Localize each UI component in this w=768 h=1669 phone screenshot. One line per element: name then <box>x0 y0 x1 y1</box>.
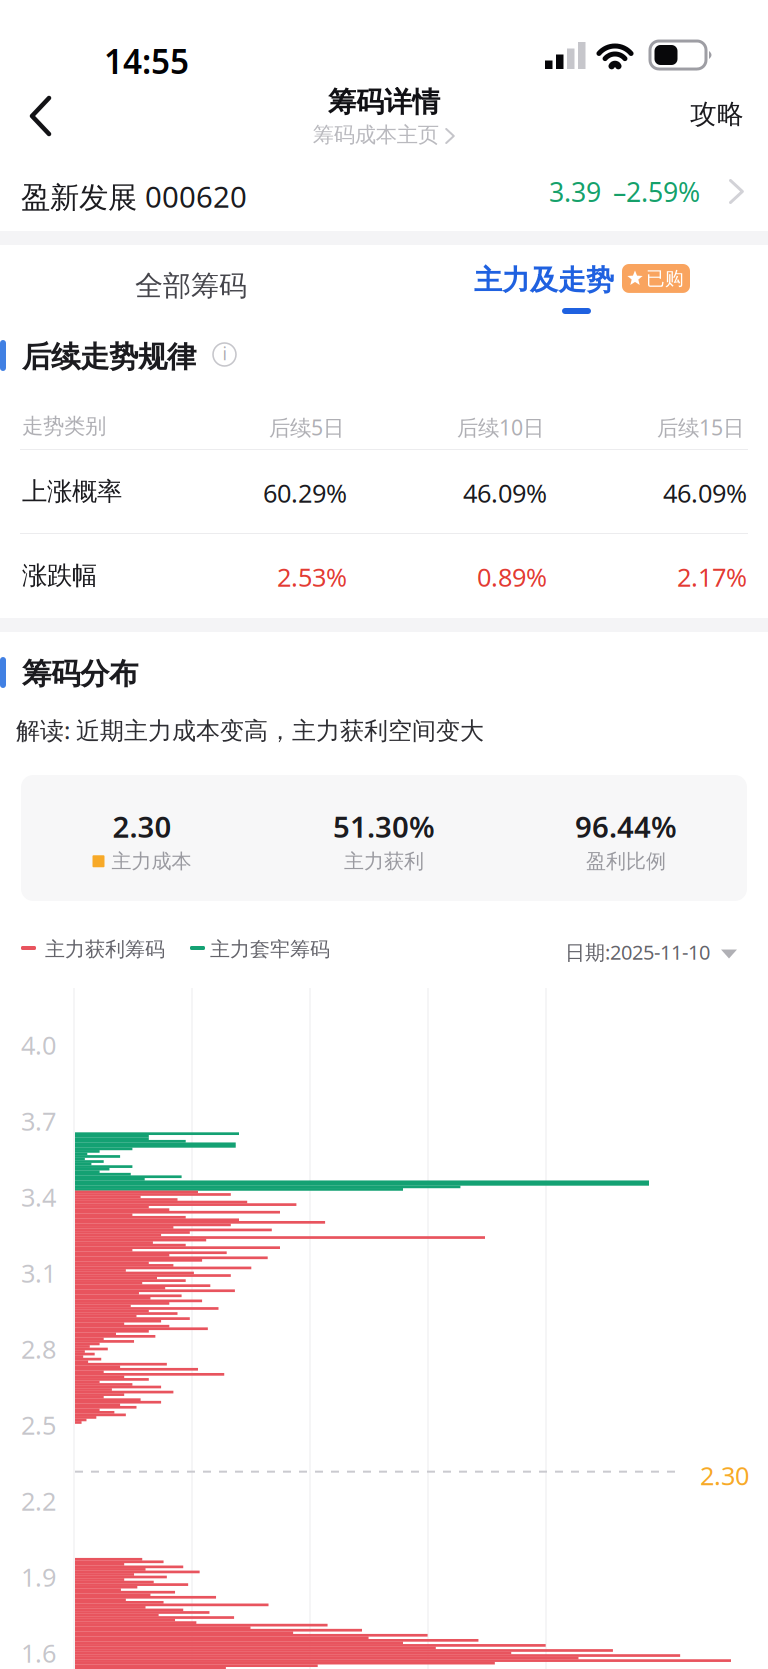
staticText: 51.30% <box>333 807 435 846</box>
staticText: 解读: 近期主力成本变高，主力获利空间变大 <box>16 714 484 746</box>
button[interactable]: Back <box>4 78 78 154</box>
staticText: 3.7 <box>21 1104 56 1138</box>
staticText: 已购 <box>646 267 684 290</box>
button[interactable]: 盈新发展 000620 <box>0 155 768 231</box>
button[interactable]: 日期:2025-11-10 <box>565 933 737 971</box>
staticText: 46.09% <box>463 476 547 510</box>
staticText: 3.39 <box>549 174 601 209</box>
staticText: 后续10日 <box>457 413 544 441</box>
staticText: 46.09% <box>663 476 747 510</box>
staticText: 3.1 <box>21 1256 56 1290</box>
staticText: 1.9 <box>21 1560 56 1594</box>
staticText: 主力获利 <box>344 849 424 874</box>
staticText: 筹码成本主页 <box>313 122 439 148</box>
staticText: 2.53% <box>277 560 347 594</box>
staticText: 主力套牢筹码 <box>210 937 330 962</box>
staticText: 3.4 <box>21 1180 56 1214</box>
staticText: i <box>222 342 226 365</box>
staticText: 2.30 <box>700 1459 749 1492</box>
button[interactable]: 主力及走势 <box>474 245 710 327</box>
staticText: 2.8 <box>21 1332 56 1366</box>
staticText: 1.6 <box>21 1636 56 1669</box>
button[interactable]: 筹码成本主页 <box>0 120 768 150</box>
staticText: 筹码分布 <box>22 656 138 692</box>
staticText: 盈利比例 <box>586 849 666 874</box>
staticText: 上涨概率 <box>22 476 122 507</box>
staticText: 60.29% <box>263 476 347 510</box>
staticText: 2.17% <box>677 560 747 594</box>
staticText: 96.44% <box>575 807 677 846</box>
staticText: 攻略 <box>690 98 744 130</box>
staticText: 0.89% <box>477 560 547 594</box>
staticText: 后续5日 <box>269 413 344 441</box>
button[interactable]: 全部筹码 <box>51 245 331 327</box>
staticText: 盈新发展 000620 <box>21 177 247 216</box>
button[interactable]: 攻略 <box>662 83 768 145</box>
staticText: 主力及走势 <box>474 263 614 297</box>
staticText: –2.59% <box>613 174 700 209</box>
staticText: 全部筹码 <box>135 269 247 303</box>
staticText: 4.0 <box>21 1028 56 1062</box>
staticText: 2.30 <box>112 807 171 846</box>
staticText: 14:55 <box>104 39 189 83</box>
staticText: 主力成本 <box>111 849 191 874</box>
staticText: 筹码详情 <box>328 85 440 119</box>
staticText: 主力获利筹码 <box>45 937 165 962</box>
staticText: 走势类别 <box>22 413 106 439</box>
staticText: 日期:2025-11-10 <box>565 939 710 965</box>
staticText: 后续15日 <box>657 413 744 441</box>
staticText: 后续走势规律 <box>22 339 196 375</box>
staticText: 涨跌幅 <box>22 560 97 591</box>
staticText: 2.2 <box>21 1484 56 1518</box>
staticText: 2.5 <box>21 1408 56 1442</box>
